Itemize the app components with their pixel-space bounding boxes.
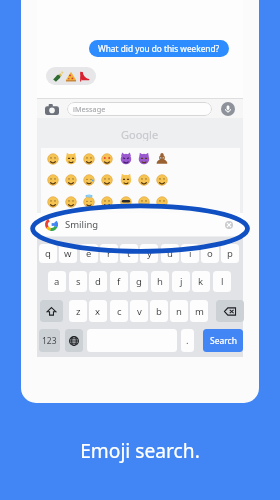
button[interactable]: [44, 195, 61, 208]
button[interactable]: [80, 173, 97, 186]
button[interactable]: q: [39, 244, 57, 263]
staticText: Smiling: [65, 218, 99, 231]
staticText: u: [167, 247, 173, 260]
button[interactable]: [46, 67, 96, 85]
button[interactable]: Change keyboard: [65, 329, 83, 352]
staticText: Emoji search.: [0, 437, 280, 463]
button[interactable]: [44, 152, 61, 165]
button[interactable]: [44, 173, 61, 186]
button[interactable]: g: [130, 271, 148, 292]
button[interactable]: [117, 152, 134, 165]
button[interactable]: Clear query: [225, 221, 233, 229]
button[interactable]: Shift: [40, 300, 63, 322]
button[interactable]: p: [221, 244, 239, 263]
staticText: i: [189, 247, 192, 260]
staticText: c: [117, 305, 122, 318]
staticText: e: [86, 247, 92, 260]
button[interactable]: Camera: [45, 104, 59, 115]
button[interactable]: w: [59, 244, 77, 263]
button[interactable]: [62, 195, 79, 208]
button[interactable]: f: [110, 271, 128, 292]
staticText: s: [76, 275, 81, 288]
button[interactable]: i: [181, 244, 199, 263]
button[interactable]: k: [192, 271, 210, 292]
button[interactable]: What did you do this weekend?: [89, 40, 229, 57]
button[interactable]: .: [181, 329, 194, 352]
button[interactable]: 123: [39, 329, 60, 352]
button[interactable]: x: [89, 300, 107, 322]
button[interactable]: [98, 195, 115, 208]
staticText: g: [136, 275, 142, 288]
button[interactable]: s: [69, 271, 87, 292]
button[interactable]: z: [69, 300, 87, 322]
staticText: x: [95, 305, 101, 318]
button[interactable]: [98, 152, 115, 165]
button[interactable]: [135, 195, 152, 208]
button[interactable]: [153, 173, 170, 186]
staticText: q: [45, 247, 51, 260]
staticText: iMessage: [73, 104, 106, 114]
button[interactable]: [62, 173, 79, 186]
staticText: o: [207, 247, 213, 260]
button[interactable]: r: [100, 244, 118, 263]
button[interactable]: [98, 173, 115, 186]
button[interactable]: v: [130, 300, 148, 322]
button[interactable]: Backspace: [216, 300, 244, 322]
button[interactable]: iMessage: [67, 102, 212, 116]
staticText: n: [176, 305, 182, 318]
button[interactable]: [153, 152, 170, 165]
button[interactable]: l: [213, 271, 231, 292]
button[interactable]: h: [151, 271, 169, 292]
button[interactable]: c: [110, 300, 128, 322]
button[interactable]: Smiling: [37, 213, 243, 236]
button[interactable]: Search: [203, 329, 243, 352]
button[interactable]: [117, 195, 134, 208]
button[interactable]: t: [120, 244, 138, 263]
staticText: f: [117, 275, 121, 288]
staticText: Google: [121, 127, 159, 141]
button[interactable]: d: [89, 271, 107, 292]
button[interactable]: [62, 152, 79, 165]
button[interactable]: [117, 173, 134, 186]
staticText: .: [186, 334, 189, 347]
staticText: v: [137, 305, 142, 318]
staticText: b: [156, 305, 162, 318]
staticText: 123: [42, 335, 57, 347]
staticText: j: [180, 275, 183, 288]
staticText: p: [227, 247, 233, 260]
staticText: Search: [210, 335, 237, 347]
staticText: a: [54, 275, 60, 288]
staticText: What did you do this weekend?: [98, 43, 220, 54]
staticText: z: [76, 305, 81, 318]
staticText: r: [107, 247, 111, 260]
button[interactable]: [153, 195, 170, 208]
button[interactable]: o: [201, 244, 219, 263]
button[interactable]: y: [140, 244, 158, 263]
button[interactable]: b: [150, 300, 168, 322]
button[interactable]: Record voice message: [221, 102, 235, 116]
staticText: t: [127, 247, 131, 260]
button[interactable]: j: [172, 271, 190, 292]
staticText: k: [198, 275, 204, 288]
button[interactable]: u: [161, 244, 179, 263]
button[interactable]: [135, 152, 152, 165]
staticText: h: [157, 275, 163, 288]
button[interactable]: [80, 152, 97, 165]
staticText: m: [195, 305, 204, 318]
button[interactable]: e: [80, 244, 98, 263]
button[interactable]: a: [48, 271, 66, 292]
button[interactable]: [135, 173, 152, 186]
staticText: y: [147, 247, 152, 260]
button[interactable]: [80, 195, 97, 208]
staticText: l: [221, 275, 224, 288]
button[interactable]: n: [170, 300, 188, 322]
button[interactable]: m: [190, 300, 208, 322]
staticText: w: [64, 247, 72, 260]
staticText: d: [95, 275, 101, 288]
